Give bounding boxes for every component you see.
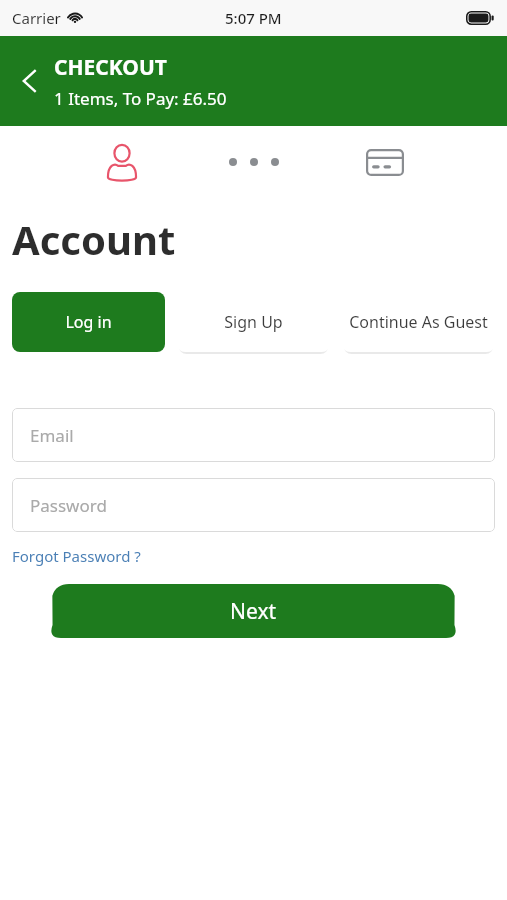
button[interactable]: Email (12, 408, 495, 462)
button[interactable]: Back (6, 57, 54, 105)
staticText: Password (30, 494, 107, 517)
button[interactable]: Forgot Password ? (12, 546, 141, 566)
staticText: 1 Items, To Pay: £6.50 (54, 87, 227, 110)
button[interactable]: Password (12, 478, 495, 532)
button[interactable]: Payment step (363, 140, 407, 184)
staticText: Next (230, 597, 277, 626)
staticText: Log in (17, 311, 160, 333)
staticText: 5:07 PM (225, 8, 282, 28)
staticText: Sign Up (182, 311, 325, 333)
button[interactable]: Account step (100, 140, 144, 184)
button[interactable]: Log in (12, 292, 165, 352)
button[interactable]: Sign Up (177, 292, 330, 352)
button[interactable]: Continue As Guest (342, 292, 495, 352)
staticText: Account (12, 212, 176, 266)
staticText: Continue As Guest (347, 311, 490, 333)
staticText: CHECKOUT (54, 53, 167, 82)
button[interactable]: Next (48, 584, 459, 638)
staticText: Email (30, 424, 74, 447)
staticText: Carrier (12, 8, 61, 28)
